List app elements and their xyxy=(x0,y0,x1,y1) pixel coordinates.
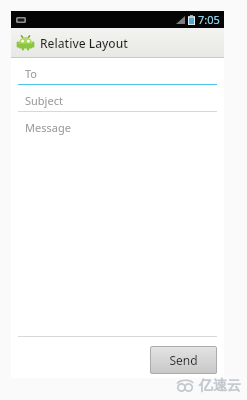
button[interactable]: Subject xyxy=(18,90,217,112)
staticText: Relative Layout xyxy=(40,35,128,51)
staticText: 亿速云 xyxy=(199,377,241,395)
button[interactable]: Send xyxy=(150,346,217,374)
staticText: Subject xyxy=(25,93,63,108)
button[interactable]: To xyxy=(18,63,217,85)
button[interactable]: Message xyxy=(18,117,217,337)
staticText: 7:05 xyxy=(198,12,220,27)
staticText: To xyxy=(25,66,38,81)
button[interactable]: App icon xyxy=(11,28,224,57)
other: App icon xyxy=(17,34,34,51)
staticText: Send xyxy=(169,352,198,368)
staticText: Message xyxy=(25,120,71,135)
